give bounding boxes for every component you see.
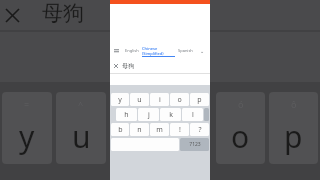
button[interactable]: ó	[216, 92, 265, 164]
staticText: y	[118, 95, 122, 105]
button[interactable]: 7123	[180, 138, 209, 151]
button[interactable]: Clear	[110, 60, 122, 72]
button[interactable]: l	[182, 108, 203, 121]
button[interactable]: j	[138, 108, 159, 121]
button[interactable]: English	[122, 45, 142, 56]
staticText: o	[231, 116, 250, 157]
staticText: j	[148, 110, 150, 120]
staticText: English	[125, 48, 139, 53]
staticText: p	[197, 95, 202, 105]
button[interactable]: b	[111, 123, 129, 136]
staticText: p	[284, 116, 303, 157]
button[interactable]: p	[190, 93, 209, 106]
staticText: 母狗	[122, 62, 134, 70]
button[interactable]: Spanish	[175, 45, 195, 56]
staticText: Spanish	[178, 48, 193, 53]
button[interactable]: m	[150, 123, 169, 136]
button[interactable]: ô	[269, 92, 318, 164]
staticText: o	[177, 95, 182, 105]
staticText: ⌄	[200, 48, 205, 54]
button[interactable]: Chinese (Simplified)	[142, 45, 175, 56]
staticText: 母狗	[42, 0, 84, 26]
button[interactable]: ?	[190, 123, 209, 136]
staticText: b	[118, 125, 123, 135]
button[interactable]: u	[130, 93, 149, 106]
staticText: y	[19, 116, 35, 157]
staticText: m	[156, 125, 163, 135]
button[interactable]: !	[170, 123, 189, 136]
button[interactable]: More languages	[195, 45, 210, 56]
button[interactable]: i	[150, 93, 169, 106]
staticText: n	[137, 125, 142, 135]
button[interactable]: Swap languages	[110, 45, 122, 56]
button[interactable]: n	[130, 123, 149, 136]
button[interactable]: h	[116, 108, 137, 121]
staticText: u	[72, 116, 91, 157]
staticText: 7123	[189, 141, 201, 148]
button[interactable]	[204, 108, 209, 121]
button[interactable]: ^	[56, 92, 106, 164]
staticText: h	[124, 110, 129, 120]
button[interactable]: Close	[0, 0, 30, 30]
staticText: u	[137, 95, 142, 105]
staticText: i	[159, 95, 161, 105]
button[interactable]: =	[2, 92, 52, 164]
staticText: k	[169, 110, 173, 120]
staticText: ?	[198, 125, 202, 135]
button[interactable]: o	[170, 93, 189, 106]
button[interactable]: k	[160, 108, 181, 121]
button[interactable]: y	[111, 93, 129, 106]
staticText: Chinese (Simplified)	[142, 46, 175, 56]
staticText: l	[192, 110, 194, 120]
staticText: !	[179, 125, 181, 135]
